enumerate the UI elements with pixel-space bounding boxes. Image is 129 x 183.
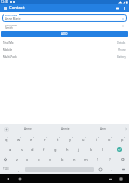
button[interactable]: Hide keyboard <box>106 175 114 183</box>
button[interactable]: l <box>97 144 109 154</box>
staticText: c <box>38 157 40 162</box>
button[interactable]: Trial Mo <box>0 39 129 46</box>
button[interactable]: v <box>44 154 56 164</box>
button[interactable]: Back <box>4 175 12 183</box>
button[interactable]: o <box>103 134 116 144</box>
staticText: Smith <box>5 26 13 30</box>
staticText: 4 <box>46 136 48 139</box>
button[interactable]: , <box>12 164 25 174</box>
button[interactable]: z <box>11 154 22 164</box>
staticText: 6 <box>72 136 74 139</box>
button[interactable]: Next <box>117 164 129 174</box>
button[interactable]: h <box>61 144 73 154</box>
button[interactable]: e <box>25 134 38 144</box>
staticText: n <box>73 157 76 162</box>
button[interactable]: Done <box>109 144 129 154</box>
staticText: w <box>17 137 21 142</box>
staticText: x <box>26 157 29 162</box>
button[interactable]: k <box>85 144 97 154</box>
staticText: t <box>57 137 59 142</box>
button[interactable]: First Name <box>2 14 127 22</box>
button[interactable]: ?123 <box>0 164 12 174</box>
button[interactable]: Google <box>4 127 9 132</box>
button[interactable]: Emoji <box>94 164 106 174</box>
staticText: ?123 <box>3 167 9 171</box>
button[interactable]: n <box>68 154 80 164</box>
button[interactable]: f <box>38 144 49 154</box>
button[interactable]: Save <box>113 4 121 12</box>
staticText: , <box>18 167 19 172</box>
staticText: 3 <box>33 136 35 139</box>
staticText: h <box>66 147 69 152</box>
button[interactable]: ! <box>92 154 104 164</box>
staticText: b <box>61 157 64 162</box>
staticText: s <box>21 147 23 152</box>
button[interactable]: ADD <box>1 31 128 37</box>
button[interactable]: Recents <box>117 175 125 183</box>
staticText: z <box>16 157 18 162</box>
button[interactable]: b <box>56 154 68 164</box>
button[interactable]: c <box>33 154 44 164</box>
button[interactable]: s <box>16 144 27 154</box>
staticText: 9 <box>111 136 113 139</box>
button[interactable]: Last Name <box>2 22 127 30</box>
staticText: r <box>44 137 46 142</box>
staticText: g <box>54 147 57 152</box>
button[interactable]: i <box>90 134 103 144</box>
staticText: Annie <box>61 127 70 131</box>
button[interactable]: q <box>0 134 12 144</box>
staticText: Trial Mo <box>3 41 14 45</box>
staticText: ? <box>109 157 111 162</box>
button[interactable]: w <box>12 134 25 144</box>
staticText: Battery <box>117 55 126 59</box>
staticText: d <box>31 147 34 152</box>
staticText: 1 <box>7 136 9 139</box>
button[interactable]: y <box>64 134 77 144</box>
button[interactable]: Multi-Pack <box>0 53 129 60</box>
button[interactable]: r <box>38 134 51 144</box>
button[interactable]: More options <box>121 5 128 12</box>
button[interactable]: g <box>49 144 61 154</box>
button[interactable]: x <box>22 154 33 164</box>
staticText: Mobile <box>3 48 12 52</box>
button[interactable]: p <box>116 134 129 144</box>
staticText: 12:30 <box>1 0 9 4</box>
staticText: j <box>78 147 80 152</box>
button[interactable]: More suggestions <box>122 124 129 134</box>
staticText: u <box>82 137 85 142</box>
button[interactable]: Home <box>16 175 24 183</box>
staticText: First Name <box>5 13 18 16</box>
button[interactable]: d <box>27 144 38 154</box>
button[interactable]: m <box>80 154 92 164</box>
staticText: i <box>96 137 98 142</box>
staticText: y <box>69 137 72 142</box>
button[interactable]: a <box>5 144 16 154</box>
button[interactable]: j <box>73 144 85 154</box>
button[interactable]: Anne <box>9 124 46 134</box>
button[interactable]: Ann <box>84 124 122 134</box>
staticText: m <box>84 157 88 162</box>
button[interactable]: Navigate up <box>2 5 8 11</box>
staticText: ADD <box>61 32 68 36</box>
staticText: Anne Marie <box>5 17 21 21</box>
staticText: o <box>108 137 111 142</box>
button[interactable]: ? <box>104 154 116 164</box>
button[interactable]: Backspace <box>116 154 129 164</box>
staticText: . <box>111 167 112 172</box>
staticText: Multi-Pack <box>3 55 17 59</box>
staticText: k <box>90 147 93 152</box>
staticText: 5 <box>59 136 61 139</box>
button[interactable]: t <box>51 134 64 144</box>
staticText: Phone <box>118 48 126 52</box>
button[interactable]: Annie <box>46 124 84 134</box>
button[interactable]: Shift <box>0 154 11 164</box>
button[interactable]: Mobile <box>0 46 129 53</box>
button[interactable]: u <box>77 134 90 144</box>
staticText: 7 <box>85 136 87 139</box>
staticText: ! <box>97 157 99 162</box>
staticText: e <box>30 137 33 142</box>
staticText: l <box>102 147 104 152</box>
staticText: q <box>5 137 8 142</box>
